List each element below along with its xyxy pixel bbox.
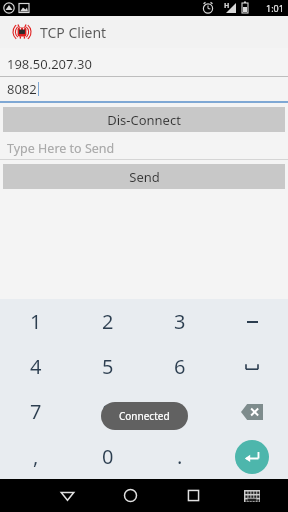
staticText: 8082 [7, 80, 37, 98]
button[interactable]: Recents [162, 479, 225, 512]
button[interactable]: 198.50.207.30 [0, 52, 288, 76]
staticText: Connected [119, 409, 170, 423]
button[interactable]: Switch keyboard [225, 479, 279, 512]
staticText: Dis-Connect [107, 111, 181, 129]
button[interactable]: Enter [216, 434, 288, 479]
button[interactable]: 7 [0, 389, 72, 434]
staticText: H [224, 1, 230, 11]
button[interactable]: Dis-Connect [3, 107, 285, 132]
staticText: 1 [30, 308, 42, 335]
button[interactable]: . [144, 434, 216, 479]
staticText: . [177, 443, 183, 470]
staticText: , [33, 443, 39, 470]
staticText: 5 [102, 353, 114, 380]
button[interactable]: 0 [72, 434, 144, 479]
button[interactable]: 3 [144, 299, 216, 344]
button[interactable]: , [0, 434, 72, 479]
button[interactable]: Backspace [216, 389, 288, 434]
staticText: 1:01 [266, 2, 284, 14]
staticText: 6 [174, 353, 186, 380]
button[interactable]: Space [216, 344, 288, 389]
button[interactable]: 9 [144, 389, 216, 434]
button[interactable]: 1 [0, 299, 72, 344]
staticText: TCP Client [40, 23, 107, 42]
staticText: 3 [174, 308, 186, 335]
staticText: Send [129, 168, 160, 186]
staticText: 2 [102, 308, 114, 335]
staticText: 7 [30, 398, 42, 425]
button[interactable]: 6 [144, 344, 216, 389]
button[interactable]: 5 [72, 344, 144, 389]
staticText: 8 [102, 398, 114, 425]
staticText: 9 [174, 398, 186, 425]
button[interactable]: Back [36, 479, 99, 512]
staticText: Type Here to Send [7, 140, 115, 157]
button[interactable]: Type Here to Send [0, 137, 288, 159]
button[interactable]: Dash [216, 299, 288, 344]
button[interactable]: Home [99, 479, 162, 512]
button[interactable]: 2 [72, 299, 144, 344]
staticText: 0 [102, 443, 114, 470]
staticText: 198.50.207.30 [7, 55, 92, 73]
button[interactable]: 4 [0, 344, 72, 389]
button[interactable]: 8 [72, 389, 144, 434]
staticText: 4 [30, 353, 42, 380]
button[interactable]: Send [3, 164, 285, 189]
button[interactable]: 8082 [0, 77, 288, 101]
